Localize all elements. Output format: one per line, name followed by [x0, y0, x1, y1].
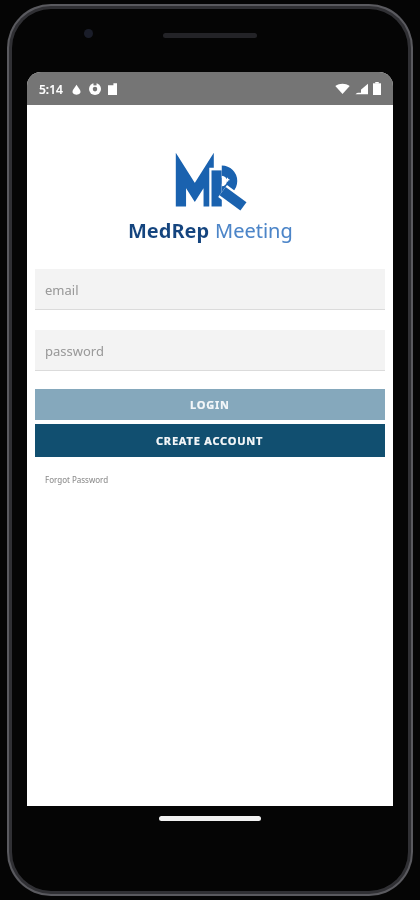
staticText: email	[45, 281, 79, 299]
staticText: 5:14	[39, 81, 63, 97]
button[interactable]: CREATE ACCOUNT	[35, 424, 385, 457]
staticText: Forgot Password	[45, 474, 109, 485]
staticText: LOGIN	[190, 397, 230, 412]
staticText: CREATE ACCOUNT	[156, 433, 264, 448]
other: MedRep Meeting logo	[172, 166, 248, 210]
button[interactable]: email	[35, 269, 385, 310]
button[interactable]: Forgot Password	[43, 472, 111, 487]
button[interactable]: password	[35, 330, 385, 371]
staticText: Meeting	[215, 217, 293, 244]
staticText: MedRep	[128, 217, 210, 244]
staticText: password	[45, 342, 104, 360]
button[interactable]: LOGIN	[35, 389, 385, 420]
